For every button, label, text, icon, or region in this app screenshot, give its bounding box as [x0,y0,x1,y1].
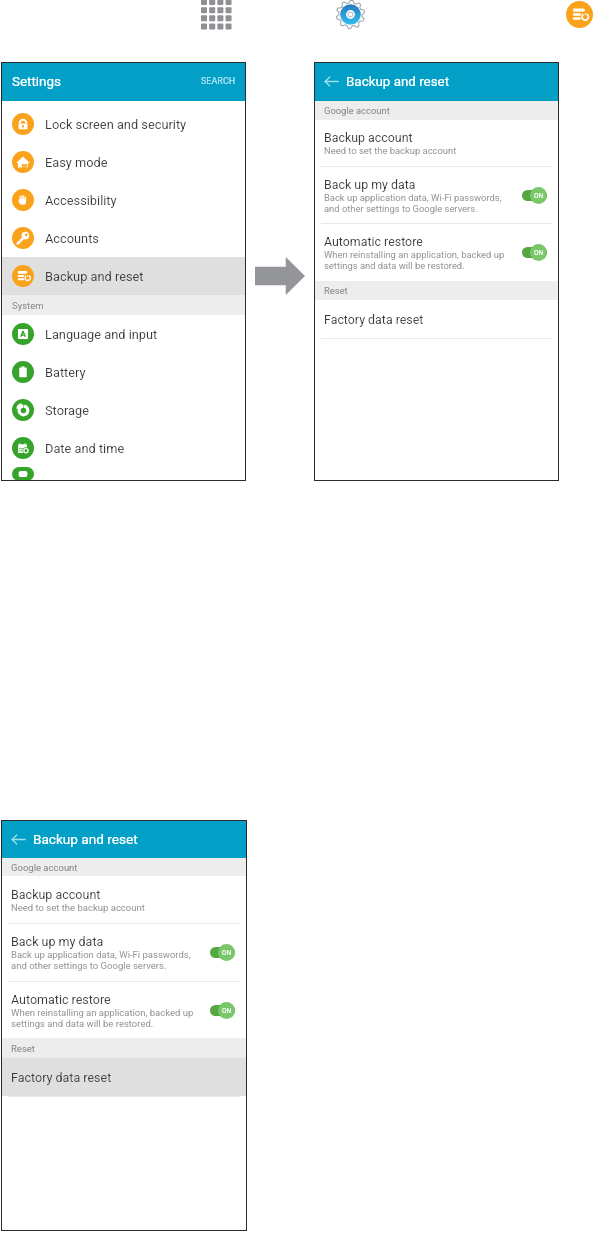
staticText: Accessibility [45,193,117,208]
staticText: Battery [45,365,86,380]
staticText: ON [534,192,544,200]
staticText: Back up my data [324,177,416,192]
button[interactable]: Easy mode [1,143,246,181]
button[interactable]: Accessibility [1,181,246,219]
staticText: Need to set the backup account [11,902,145,913]
staticText: Language and input [45,327,158,342]
staticText: Settings [12,74,61,90]
staticText: Need to set the backup account [324,145,457,156]
staticText: Back up application data, Wi-Fi password… [11,949,191,960]
button[interactable]: Language and input [1,315,246,353]
staticText: ON [534,249,544,257]
staticText: Backup account [324,130,413,145]
staticText: System [12,300,44,311]
staticText: settings and data will be restored. [324,260,465,271]
staticText: Google account [324,105,390,116]
button[interactable]: Back [11,832,26,847]
staticText: Accounts [45,231,99,246]
staticText: Backup and reset [346,74,450,90]
button[interactable]: Back [324,74,339,89]
button[interactable]: Accounts [1,219,246,257]
button[interactable]: Automatic restore [314,224,559,281]
staticText: and other settings to Google servers. [324,203,478,214]
staticText: Back up my data [11,934,104,949]
button[interactable]: On [522,244,547,261]
button[interactable]: Backup account [1,876,247,923]
button[interactable] [1,467,246,481]
button[interactable]: Backup and reset [1,257,246,295]
button[interactable]: On [210,1002,235,1019]
staticText: Factory data reset [324,312,424,327]
staticText: Google account [11,862,78,873]
staticText: Reset [324,285,348,296]
staticText: Back up application data, Wi-Fi password… [324,192,502,203]
button[interactable]: Date and time [1,429,246,467]
staticText: When reinstalling an application, backed… [11,1007,194,1018]
button[interactable]: Backup account [314,120,559,166]
button[interactable]: Factory data reset [1,1058,247,1096]
staticText: ON [222,1007,232,1015]
staticText: settings and data will be restored. [11,1018,154,1029]
button[interactable]: On [522,187,547,204]
staticText: SEARCH [201,76,236,87]
staticText: Automatic restore [324,234,423,249]
button[interactable]: SEARCH [199,72,238,91]
button[interactable]: Automatic restore [1,982,247,1038]
staticText: Easy mode [45,155,108,170]
staticText: and other settings to Google servers. [11,960,167,971]
staticText: Date and time [45,441,125,456]
staticText: Storage [45,403,89,418]
staticText: Lock screen and security [45,117,187,132]
staticText: When reinstalling an application, backed… [324,249,505,260]
staticText: Reset [11,1043,35,1054]
button[interactable]: Lock screen and security [1,105,246,143]
button[interactable]: Backup and reset [566,1,593,28]
button[interactable]: Apps [201,0,230,28]
staticText: Backup and reset [33,831,138,847]
staticText: Automatic restore [11,992,111,1007]
button[interactable]: On [210,944,235,961]
staticText: Backup account [11,887,101,902]
staticText: Backup and reset [45,269,144,284]
button[interactable]: Storage [1,391,246,429]
button[interactable]: Factory data reset [314,300,559,338]
staticText: ON [222,949,232,957]
staticText: Factory data reset [11,1070,112,1085]
button[interactable]: Settings [336,0,365,29]
button[interactable]: Back up my data [314,167,559,223]
button[interactable]: Back up my data [1,924,247,981]
button[interactable]: Battery [1,353,246,391]
